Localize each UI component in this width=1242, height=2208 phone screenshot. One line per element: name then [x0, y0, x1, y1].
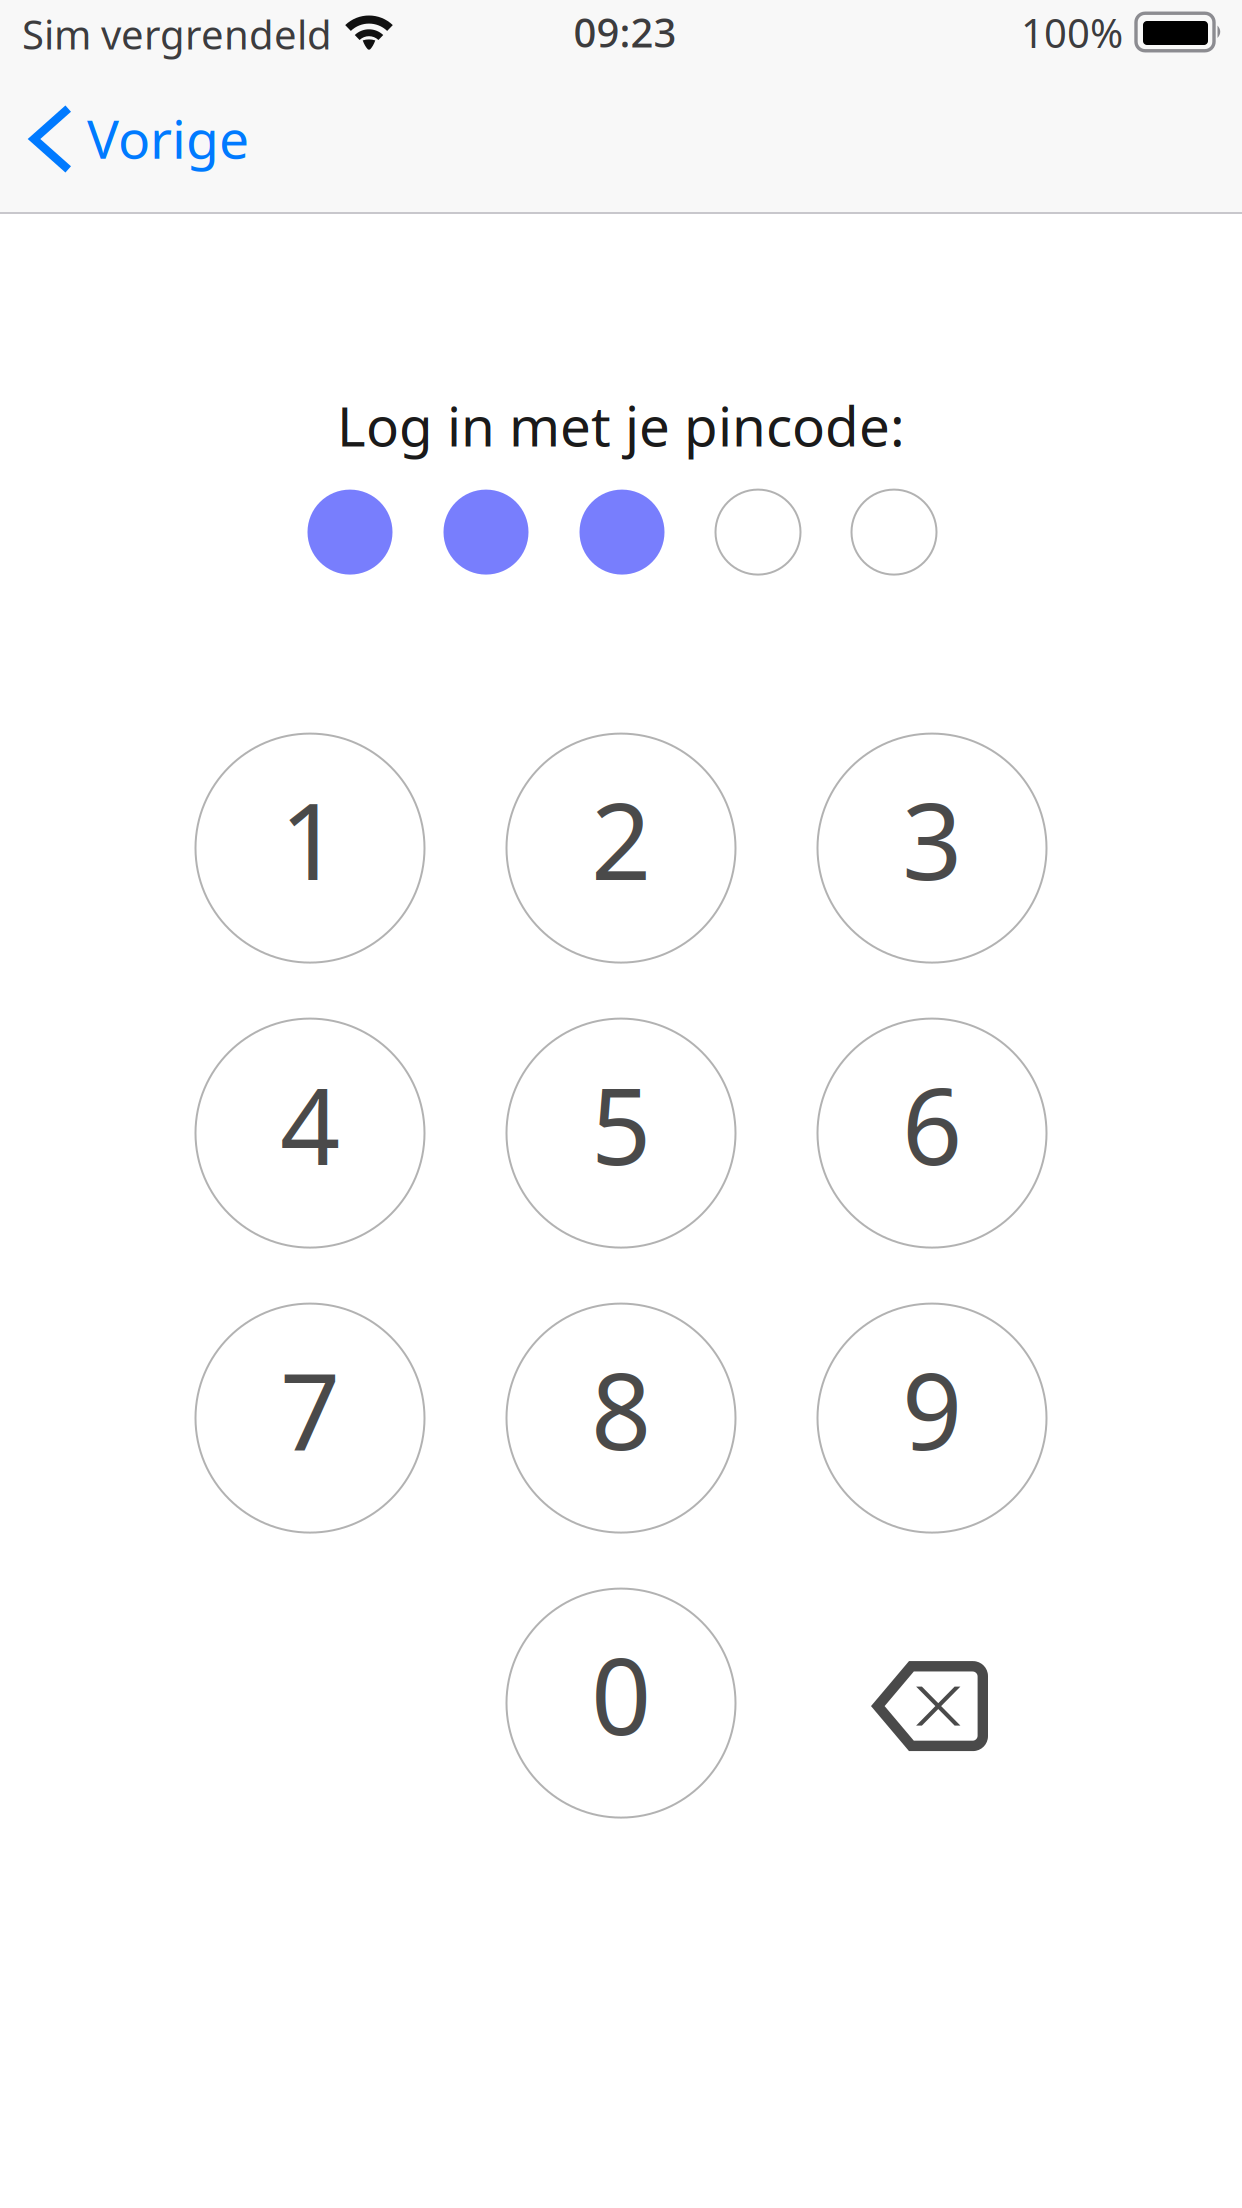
- button[interactable]: 3: [817, 734, 1046, 963]
- staticText: Vorige: [87, 103, 249, 173]
- staticText: 0: [591, 1624, 651, 1764]
- staticText: Log in met je pincode:: [337, 389, 905, 462]
- staticText: 7: [280, 1339, 340, 1479]
- staticText: 4: [280, 1054, 340, 1194]
- button[interactable]: 7: [195, 1304, 424, 1533]
- staticText: 1: [280, 769, 340, 909]
- staticText: Sim vergrendeld: [22, 7, 332, 60]
- button[interactable]: 8: [506, 1304, 735, 1533]
- staticText: 2: [591, 769, 651, 909]
- staticText: 6: [902, 1054, 962, 1194]
- button[interactable]: 5: [506, 1019, 735, 1248]
- button[interactable]: 6: [817, 1019, 1046, 1248]
- button[interactable]: 9: [817, 1304, 1046, 1533]
- staticText: 8: [591, 1339, 651, 1479]
- button[interactable]: 0: [506, 1589, 735, 1818]
- staticText: 9: [902, 1339, 962, 1479]
- button[interactable]: 1: [195, 734, 424, 963]
- button[interactable]: 2: [506, 734, 735, 963]
- button[interactable]: 4: [195, 1019, 424, 1248]
- staticText: 3: [902, 769, 962, 909]
- staticText: 09:23: [573, 5, 676, 58]
- button[interactable]: Delete: [817, 1589, 1046, 1818]
- staticText: 100%: [1021, 6, 1123, 59]
- button[interactable]: Vorige: [0, 60, 275, 212]
- staticText: 5: [591, 1054, 651, 1194]
